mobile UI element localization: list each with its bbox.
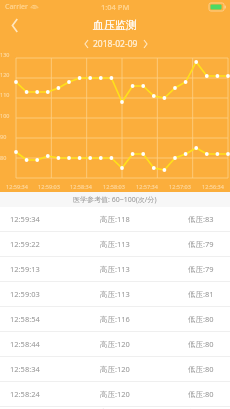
staticText: 高压:113 [100,264,130,274]
button[interactable]: 12:59:22 [0,232,230,256]
staticText: 12:58:44 [10,339,40,349]
staticText: 130 [0,51,10,58]
button[interactable]: 12:58:54 [0,307,230,331]
staticText: 低压:83 [188,214,214,224]
staticText: Carrier [5,2,28,12]
staticText: 120 [0,71,10,78]
staticText: 12:58:34 [10,364,40,374]
staticText: 高压:116 [100,314,130,324]
staticText: 低压:79 [188,239,214,249]
staticText: 12:59:03 [38,183,60,190]
staticText: 90 [0,133,7,140]
staticText: 12:59:03 [10,289,40,299]
button[interactable]: Previous day [79,36,93,52]
staticText: 低压:80 [188,364,214,374]
staticText: 12:59:34 [6,183,28,190]
button[interactable]: 12:58:24 [0,382,230,406]
staticText: 高压:113 [100,239,130,249]
staticText: 12:58:24 [10,389,40,399]
staticText: 100 [0,112,10,119]
staticText: 12:59:22 [10,239,40,249]
staticText: 高压:120 [100,339,130,349]
staticText: 12:56:34 [202,183,224,190]
button[interactable]: 12:59:34 [0,207,230,231]
button[interactable]: 12:59:03 [0,282,230,306]
staticText: 80 [0,154,7,161]
staticText: 12:58:54 [10,314,40,324]
staticText: 12:59:13 [10,264,40,274]
staticText: 12:59:34 [10,214,40,224]
button[interactable]: Next day [138,36,152,52]
staticText: 低压:80 [188,389,214,399]
button[interactable]: 12:58:34 [0,357,230,381]
staticText: 低压:79 [188,264,214,274]
button[interactable]: 12:58:44 [0,332,230,356]
staticText: 12:57:34 [136,183,158,190]
button[interactable]: Back [0,14,30,36]
staticText: 110 [0,91,10,98]
staticText: 12:58:34 [70,183,92,190]
staticText: 低压:80 [188,339,214,349]
staticText: 低压:81 [188,289,214,299]
staticText: 高压:113 [100,289,130,299]
button[interactable]: 12:59:13 [0,257,230,281]
staticText: 2018-02-09 [93,38,138,50]
staticText: 医学参考值: 60~100(次/分) [73,195,157,205]
staticText: 12:57:03 [169,183,191,190]
staticText: 高压:118 [100,214,130,224]
staticText: 12:58:03 [103,183,125,190]
staticText: 高压:120 [100,364,130,374]
staticText: 高压:120 [100,389,130,399]
staticText: 血压监测 [93,18,137,32]
staticText: 1:04 PM [101,2,130,12]
staticText: 低压:80 [188,314,214,324]
